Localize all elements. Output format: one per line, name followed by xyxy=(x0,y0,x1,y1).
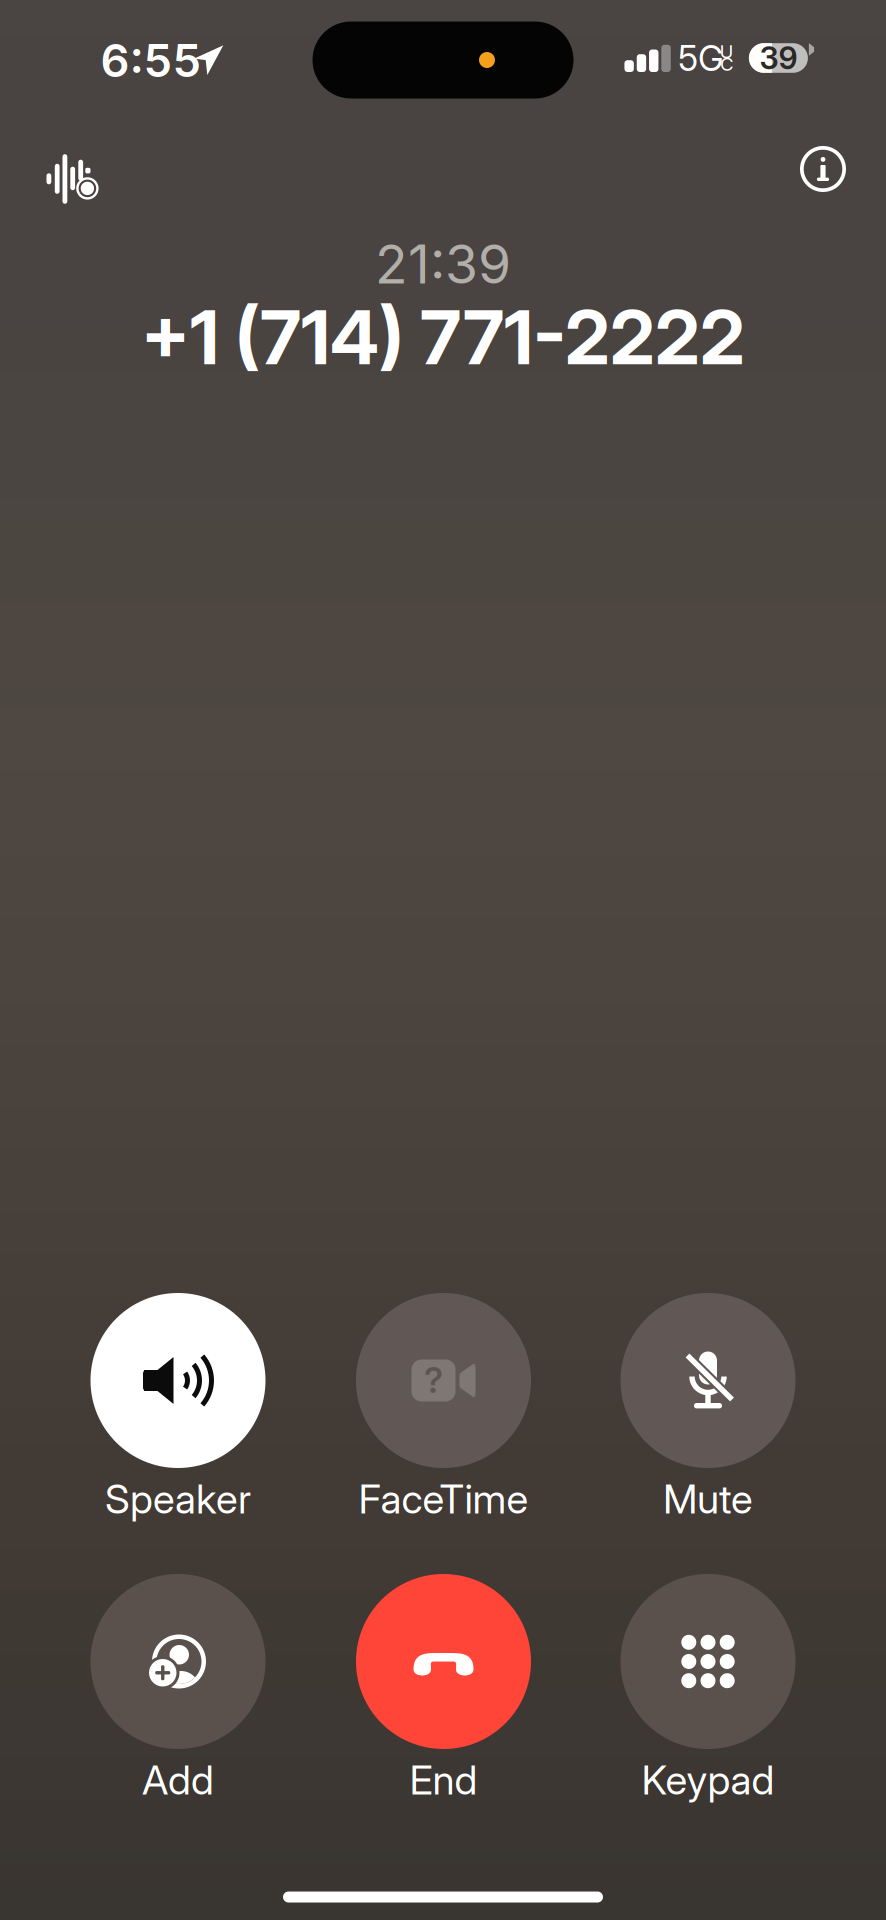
staticText: Speaker xyxy=(105,1475,251,1523)
staticText: End xyxy=(409,1756,477,1804)
button[interactable]: Add xyxy=(58,1574,298,1819)
button[interactable]: Speaker xyxy=(58,1293,298,1538)
staticText: 5G xyxy=(678,37,724,79)
button[interactable]: ? xyxy=(323,1293,563,1538)
button[interactable]: Keypad xyxy=(588,1574,828,1819)
staticText: FaceTime xyxy=(358,1475,528,1523)
staticText: +1 (714) 771-2222 xyxy=(141,292,745,382)
staticText: 39 xyxy=(759,39,797,76)
staticText: 6:55 xyxy=(100,33,201,88)
staticText: C xyxy=(720,53,734,75)
button[interactable]: Call recording xyxy=(24,128,120,224)
staticText: ? xyxy=(424,1359,443,1401)
staticText: Add xyxy=(142,1756,214,1804)
button[interactable]: End xyxy=(323,1574,563,1819)
staticText: Keypad xyxy=(641,1756,774,1804)
staticText: U xyxy=(719,40,733,63)
staticText: 21:39 xyxy=(375,232,511,296)
button[interactable]: Call info xyxy=(780,126,866,212)
staticText: Mute xyxy=(663,1475,753,1523)
button[interactable]: Mute xyxy=(588,1293,828,1538)
